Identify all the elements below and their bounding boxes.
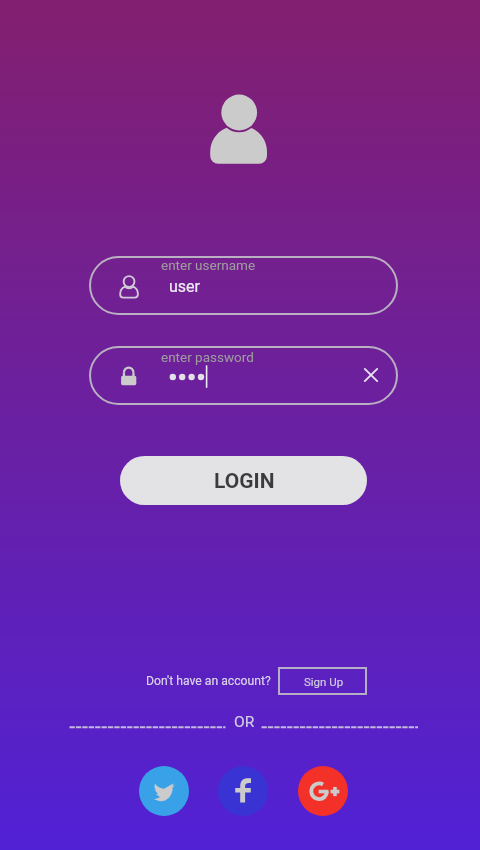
button[interactable]: Sign in with Twitter [139,766,189,816]
staticText: LOGIN [214,469,275,494]
staticText: Sign Up [304,675,344,688]
staticText: Don't have an account? [146,674,271,688]
button[interactable]: LOGIN [120,456,367,505]
staticText: enter password [161,349,254,365]
staticText: user [169,277,200,296]
staticText: OR [234,713,255,731]
button[interactable]: Sign in with Google [298,766,348,816]
button[interactable]: Clear password [359,363,383,387]
button[interactable] [89,256,398,315]
button[interactable]: Sign in with Facebook [218,766,268,816]
staticText: enter username [161,257,256,273]
button[interactable]: Sign Up [278,667,367,695]
button[interactable] [89,346,398,405]
